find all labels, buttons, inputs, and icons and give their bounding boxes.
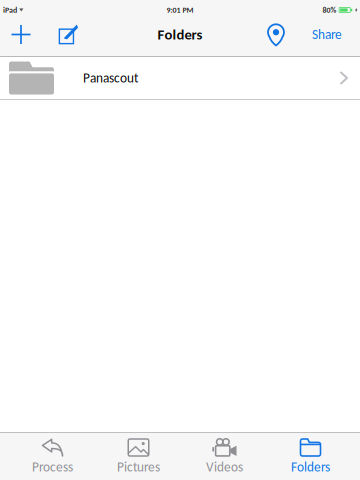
button[interactable]: Share: [300, 19, 354, 49]
button[interactable]: Pictures: [95, 433, 181, 480]
button[interactable]: Videos: [181, 433, 267, 480]
button[interactable]: Folders: [267, 433, 353, 480]
button[interactable]: Compose: [42, 19, 92, 49]
staticText: Panascout: [83, 70, 138, 86]
staticText: iPad: [3, 5, 17, 15]
staticText: 80%: [322, 5, 336, 15]
button[interactable]: Process: [9, 433, 95, 480]
staticText: Folders: [291, 459, 330, 475]
button[interactable]: Location: [252, 19, 300, 49]
button[interactable]: Panascout: [0, 57, 360, 99]
staticText: Videos: [206, 459, 243, 475]
staticText: 9:01 PM: [166, 5, 193, 15]
button[interactable]: Add folder: [0, 19, 42, 49]
staticText: Pictures: [117, 459, 160, 475]
staticText: Share: [312, 26, 342, 43]
staticText: Folders: [157, 25, 202, 43]
staticText: Process: [32, 459, 73, 475]
